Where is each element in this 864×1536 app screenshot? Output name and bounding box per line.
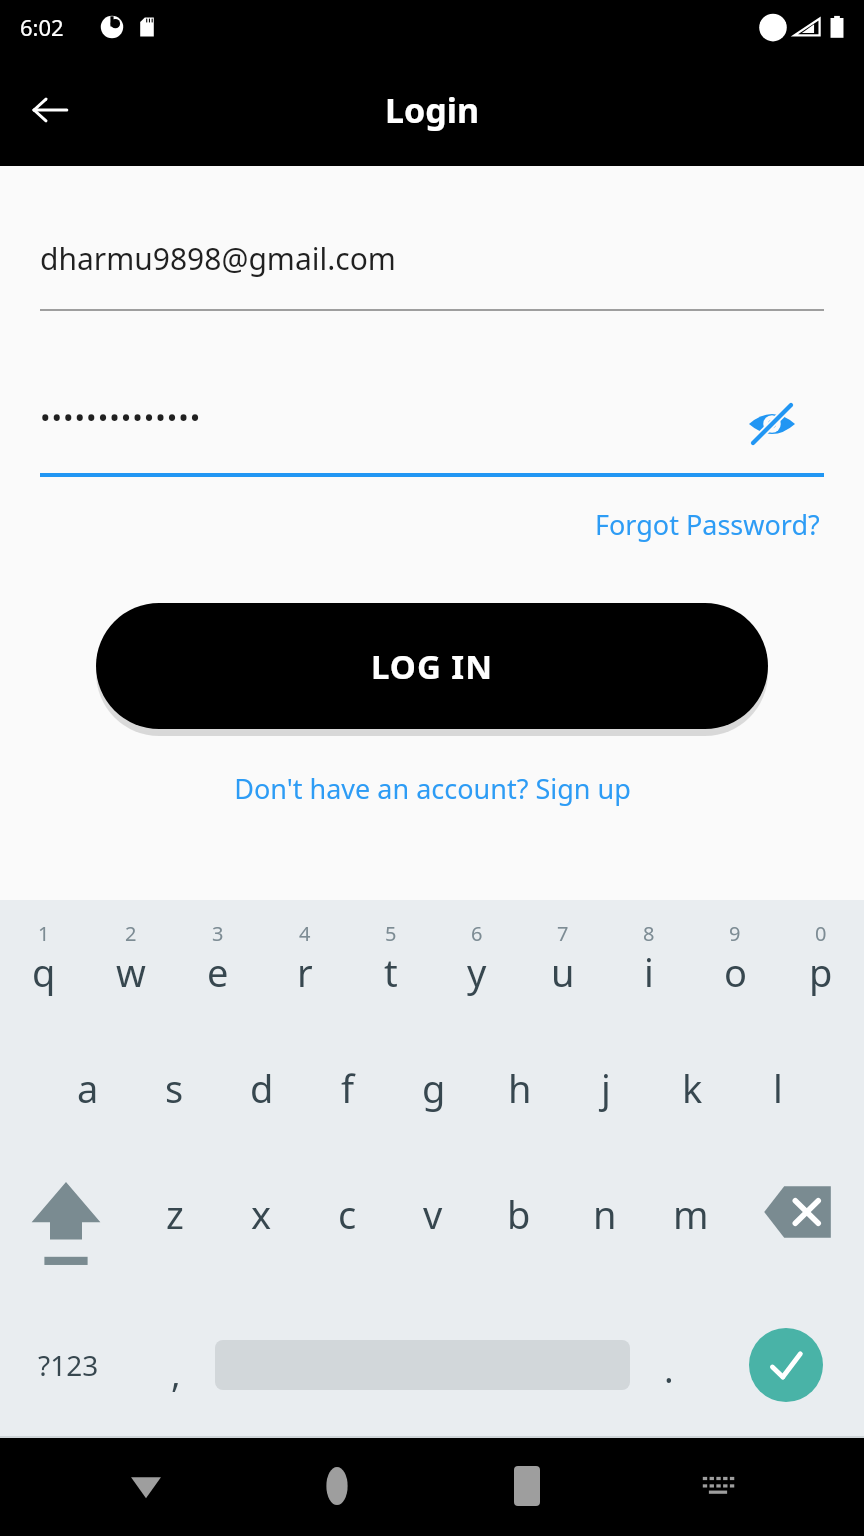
button[interactable]: s bbox=[131, 1032, 218, 1166]
staticText: 6:02 bbox=[20, 12, 64, 42]
staticText: m bbox=[673, 1188, 709, 1240]
button[interactable]: . bbox=[630, 1300, 708, 1430]
button[interactable]: x bbox=[218, 1166, 304, 1300]
button[interactable]: LOG IN bbox=[96, 603, 768, 729]
staticText: p bbox=[809, 946, 833, 998]
staticText: 5 bbox=[385, 920, 397, 947]
button[interactable]: b bbox=[476, 1166, 562, 1300]
staticText: 0 bbox=[815, 920, 827, 947]
staticText: Don't have an account? Sign up bbox=[234, 770, 631, 807]
staticText: , bbox=[171, 1349, 181, 1398]
button[interactable]: 8 bbox=[606, 910, 692, 1032]
button[interactable]: Back bbox=[22, 82, 78, 138]
button[interactable] bbox=[215, 1300, 630, 1430]
button[interactable]: Backspace bbox=[734, 1166, 864, 1300]
button[interactable]: 7 bbox=[520, 910, 606, 1032]
staticText: ?123 bbox=[38, 1346, 99, 1384]
button[interactable]: , bbox=[137, 1300, 215, 1430]
staticText: t bbox=[384, 946, 398, 998]
button[interactable]: j bbox=[563, 1032, 649, 1166]
staticText: d bbox=[250, 1062, 274, 1114]
staticText: 7 bbox=[557, 920, 569, 947]
button[interactable]: 0 bbox=[778, 910, 864, 1032]
button[interactable]: v bbox=[390, 1166, 476, 1300]
staticText: x bbox=[251, 1188, 272, 1240]
button[interactable]: 6 bbox=[434, 910, 520, 1032]
staticText: LOG IN bbox=[371, 644, 494, 689]
staticText: q bbox=[32, 946, 56, 998]
staticText: 3 bbox=[212, 920, 224, 947]
button[interactable]: 9 bbox=[692, 910, 778, 1032]
staticText: w bbox=[116, 946, 146, 998]
staticText: r bbox=[297, 946, 313, 998]
button[interactable]: Recents bbox=[482, 1441, 572, 1531]
staticText: z bbox=[166, 1188, 184, 1240]
button[interactable]: Hide password bbox=[736, 388, 808, 460]
button[interactable]: 2 bbox=[87, 910, 174, 1032]
staticText: j bbox=[601, 1062, 611, 1114]
staticText: •••••••••••••• bbox=[40, 398, 202, 436]
button[interactable]: l bbox=[735, 1032, 821, 1166]
staticText: a bbox=[77, 1062, 99, 1114]
button[interactable]: Home bbox=[292, 1441, 382, 1531]
button[interactable]: n bbox=[562, 1166, 648, 1300]
button[interactable]: Enter bbox=[708, 1300, 864, 1430]
staticText: s bbox=[165, 1062, 184, 1114]
button[interactable]: m bbox=[648, 1166, 734, 1300]
button[interactable]: a bbox=[44, 1032, 131, 1166]
button[interactable]: z bbox=[131, 1166, 218, 1300]
staticText: y bbox=[467, 946, 487, 998]
staticText: Login bbox=[385, 87, 480, 133]
staticText: dharmu9898@gmail.com bbox=[40, 238, 396, 279]
button[interactable]: Keyboard bbox=[673, 1441, 763, 1531]
button[interactable]: Shift bbox=[0, 1166, 131, 1300]
button[interactable]: 4 bbox=[261, 910, 348, 1032]
button[interactable]: c bbox=[304, 1166, 390, 1300]
staticText: 6 bbox=[471, 920, 483, 947]
staticText: i bbox=[644, 946, 654, 998]
staticText: b bbox=[507, 1188, 531, 1240]
staticText: k bbox=[682, 1062, 703, 1114]
button[interactable]: ?123 bbox=[0, 1300, 137, 1430]
staticText: c bbox=[338, 1188, 357, 1240]
staticText: u bbox=[551, 946, 575, 998]
staticText: l bbox=[773, 1062, 783, 1114]
staticText: 2 bbox=[125, 920, 137, 947]
button[interactable]: Forgot Password? bbox=[0, 506, 820, 543]
button[interactable]: h bbox=[477, 1032, 563, 1166]
staticText: h bbox=[508, 1062, 532, 1114]
staticText: 1 bbox=[38, 920, 50, 947]
staticText: 8 bbox=[643, 920, 655, 947]
staticText: g bbox=[422, 1062, 446, 1114]
button[interactable]: Back bbox=[101, 1441, 191, 1531]
button[interactable]: Don't have an account? Sign up bbox=[0, 770, 864, 807]
staticText: . bbox=[664, 1345, 674, 1394]
staticText: 9 bbox=[729, 920, 741, 947]
staticText: 4 bbox=[299, 920, 311, 947]
staticText: e bbox=[207, 946, 229, 998]
button[interactable]: g bbox=[391, 1032, 477, 1166]
button[interactable]: 3 bbox=[174, 910, 261, 1032]
staticText: Forgot Password? bbox=[595, 506, 820, 543]
staticText: o bbox=[724, 946, 747, 998]
staticText: n bbox=[593, 1188, 617, 1240]
staticText: f bbox=[341, 1062, 355, 1114]
button[interactable]: 5 bbox=[348, 910, 434, 1032]
button[interactable]: f bbox=[305, 1032, 391, 1166]
button[interactable]: d bbox=[218, 1032, 305, 1166]
button[interactable]: 1 bbox=[0, 910, 87, 1032]
button[interactable]: k bbox=[649, 1032, 735, 1166]
staticText: v bbox=[423, 1188, 443, 1240]
